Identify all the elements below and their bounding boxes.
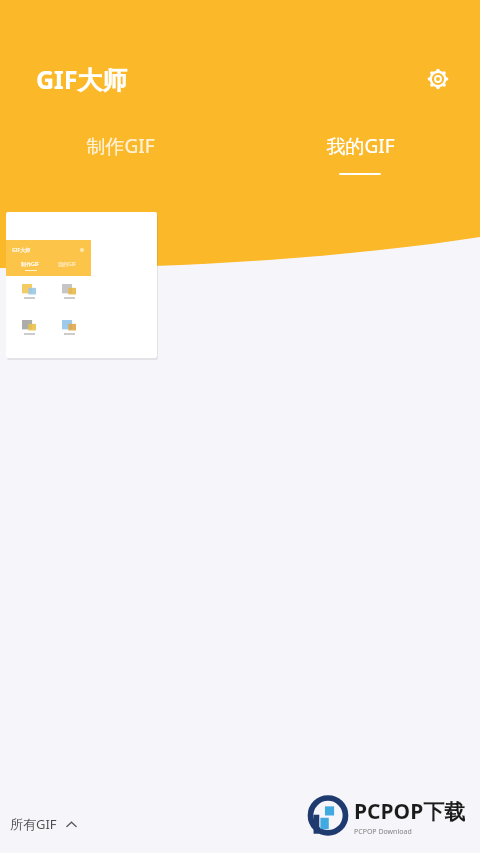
staticText: GIF大师 <box>36 62 128 96</box>
staticText: 我的GIF <box>326 133 395 159</box>
button[interactable]: GIF大师 <box>6 212 157 358</box>
staticText: 所有GIF <box>10 815 57 833</box>
staticText: PCPOP下载 <box>354 797 466 826</box>
button[interactable]: Settings <box>418 59 458 99</box>
staticText: PCPOP Download <box>354 827 412 837</box>
staticText: 制作GIF <box>86 133 155 159</box>
staticText: 制作GIF <box>21 261 39 268</box>
staticText: 我的GIF <box>58 261 76 268</box>
button[interactable]: 我的GIF <box>240 129 480 179</box>
button[interactable]: 制作GIF <box>0 129 240 179</box>
button[interactable]: 所有GIF <box>10 815 77 833</box>
staticText: GIF大师 <box>12 247 31 254</box>
